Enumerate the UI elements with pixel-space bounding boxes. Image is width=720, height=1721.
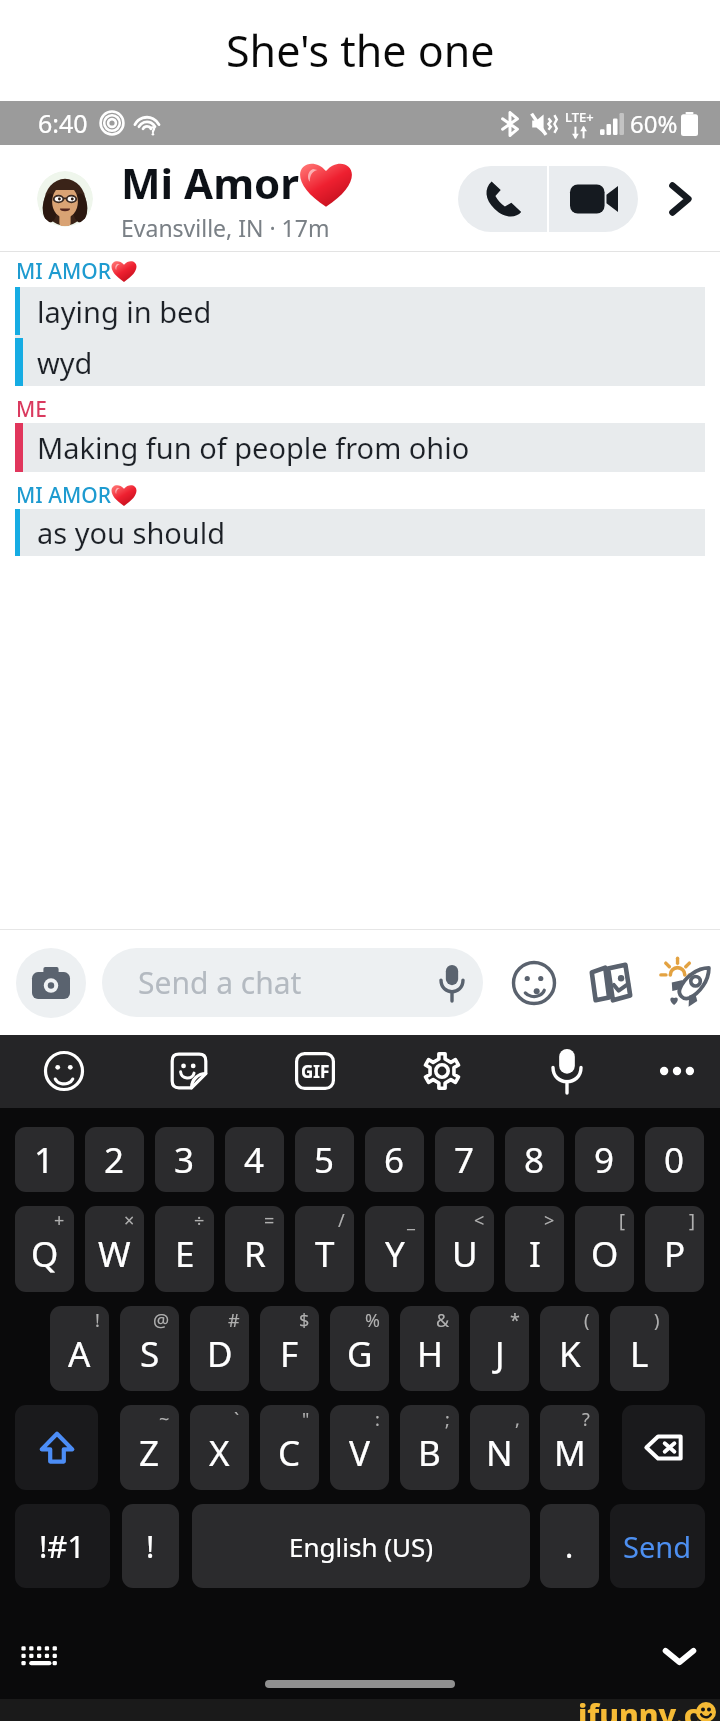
button[interactable]: F bbox=[260, 1306, 319, 1391]
staticText: Z bbox=[139, 1429, 160, 1477]
button[interactable]: R bbox=[225, 1206, 284, 1292]
button[interactable]: Z bbox=[120, 1405, 179, 1490]
button[interactable] bbox=[15, 509, 705, 556]
button[interactable]: More bbox=[645, 1039, 709, 1103]
button[interactable]: 9 bbox=[575, 1127, 634, 1192]
staticText: : bbox=[375, 1407, 380, 1432]
button[interactable]: I bbox=[505, 1206, 564, 1292]
button[interactable]: Y bbox=[365, 1206, 424, 1292]
staticText: N bbox=[486, 1429, 513, 1477]
staticText: Mi Amor bbox=[121, 154, 300, 211]
staticText: / bbox=[338, 1208, 345, 1233]
button[interactable]: Backspace bbox=[622, 1405, 705, 1490]
button[interactable]: B bbox=[400, 1405, 459, 1490]
button[interactable]: 5 bbox=[295, 1127, 354, 1192]
staticText: + bbox=[54, 1208, 65, 1233]
staticText: H bbox=[417, 1330, 443, 1378]
staticText: 8 bbox=[524, 1136, 545, 1184]
button[interactable]: S bbox=[120, 1306, 179, 1391]
button[interactable]: Send a chat bbox=[102, 948, 483, 1017]
button[interactable]: 1 bbox=[15, 1127, 74, 1192]
button[interactable]: O bbox=[575, 1206, 634, 1292]
button[interactable]: 7 bbox=[435, 1127, 494, 1192]
button[interactable]: 4 bbox=[225, 1127, 284, 1192]
staticText: T bbox=[315, 1230, 335, 1278]
staticText: Send a chat bbox=[138, 962, 421, 1003]
staticText: LTE+ bbox=[565, 108, 594, 126]
button[interactable]: D bbox=[190, 1306, 249, 1391]
button[interactable]: Change keyboard bbox=[20, 1645, 59, 1667]
button[interactable]: T bbox=[295, 1206, 354, 1292]
button[interactable]: G bbox=[330, 1306, 389, 1391]
button[interactable]: A bbox=[50, 1306, 109, 1391]
staticText: @ bbox=[153, 1308, 170, 1333]
button[interactable]: Video call bbox=[549, 166, 638, 232]
staticText: % bbox=[365, 1308, 380, 1333]
button[interactable]: J bbox=[470, 1306, 529, 1391]
button[interactable]: 3 bbox=[155, 1127, 214, 1192]
button[interactable]: Cameos bbox=[581, 953, 641, 1013]
staticText: ! bbox=[146, 1525, 155, 1567]
button[interactable]: K bbox=[540, 1306, 599, 1391]
button[interactable]: V bbox=[330, 1405, 389, 1490]
staticText: # bbox=[228, 1308, 240, 1333]
button[interactable]: Hide keyboard bbox=[662, 1644, 697, 1668]
staticText: as you should bbox=[37, 513, 226, 552]
button[interactable]: ! bbox=[122, 1504, 179, 1588]
button[interactable]: E bbox=[155, 1206, 214, 1292]
button[interactable]: Games bbox=[657, 952, 719, 1014]
button[interactable]: Stickers bbox=[504, 953, 564, 1013]
button[interactable] bbox=[15, 287, 705, 386]
button[interactable]: Emoji bbox=[32, 1039, 96, 1103]
staticText: A bbox=[68, 1330, 91, 1378]
button[interactable]: U bbox=[435, 1206, 494, 1292]
staticText: O bbox=[591, 1230, 619, 1278]
button[interactable]: Profile bbox=[37, 171, 93, 227]
staticText: ÷ bbox=[194, 1208, 205, 1233]
button[interactable] bbox=[15, 423, 705, 472]
staticText: !#1 bbox=[39, 1525, 86, 1567]
staticText: 0 bbox=[664, 1136, 685, 1184]
staticText: & bbox=[436, 1308, 450, 1333]
button[interactable]: Send bbox=[610, 1504, 705, 1588]
staticText: ( bbox=[584, 1308, 590, 1333]
button[interactable]: 8 bbox=[505, 1127, 564, 1192]
staticText: × bbox=[124, 1208, 135, 1233]
staticText: Y bbox=[385, 1230, 405, 1278]
button[interactable]: Open chat bbox=[652, 171, 708, 227]
staticText: B bbox=[418, 1429, 441, 1477]
button[interactable]: H bbox=[400, 1306, 459, 1391]
staticText: S bbox=[140, 1330, 160, 1378]
button[interactable]: Voice input bbox=[535, 1039, 599, 1103]
button[interactable]: English (US) bbox=[192, 1504, 530, 1588]
button[interactable]: Shift bbox=[15, 1405, 98, 1490]
button[interactable]: M bbox=[540, 1405, 599, 1490]
button[interactable]: 2 bbox=[85, 1127, 144, 1192]
button[interactable]: C bbox=[260, 1405, 319, 1490]
staticText: 1 bbox=[34, 1136, 55, 1184]
staticText: L bbox=[630, 1330, 649, 1378]
button[interactable]: W bbox=[85, 1206, 144, 1292]
staticText: , bbox=[515, 1407, 520, 1432]
button[interactable]: P bbox=[645, 1206, 704, 1292]
button[interactable]: Settings bbox=[410, 1039, 474, 1103]
button[interactable]: Q bbox=[15, 1206, 74, 1292]
button[interactable]: 0 bbox=[645, 1127, 704, 1192]
button[interactable]: X bbox=[190, 1405, 249, 1490]
button[interactable]: Call bbox=[458, 166, 547, 232]
button[interactable]: !#1 bbox=[15, 1504, 110, 1588]
staticText: > bbox=[544, 1208, 555, 1233]
button[interactable]: N bbox=[470, 1405, 529, 1490]
button[interactable]: L bbox=[610, 1306, 669, 1391]
staticText: F bbox=[280, 1330, 299, 1378]
staticText: ; bbox=[445, 1407, 450, 1432]
staticText: 6:40 bbox=[38, 106, 88, 140]
button[interactable]: Stickers bbox=[157, 1039, 221, 1103]
button[interactable]: Voice note bbox=[421, 952, 483, 1014]
button[interactable]: 6 bbox=[365, 1127, 424, 1192]
staticText: D bbox=[207, 1330, 233, 1378]
button[interactable]: Camera bbox=[16, 948, 86, 1018]
button[interactable]: . bbox=[540, 1504, 599, 1588]
staticText: 9 bbox=[594, 1136, 615, 1184]
button[interactable]: GIF bbox=[283, 1039, 347, 1103]
